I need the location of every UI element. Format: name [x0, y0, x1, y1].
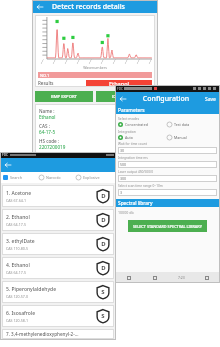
staticText: ╱: [53, 59, 56, 64]
button[interactable]: Explosive: [76, 175, 113, 180]
staticText: Wait for time count: [118, 142, 147, 146]
button[interactable]: Back: [119, 95, 127, 103]
staticText: Parameters: [118, 107, 145, 114]
button[interactable]: 30: [118, 147, 217, 154]
staticText: 500: [120, 162, 127, 167]
button[interactable]: 6. Isosafrole: [2, 305, 114, 327]
staticText: D: [101, 264, 106, 272]
staticText: ╱: [137, 59, 140, 64]
staticText: CAS 110-80-5: [6, 246, 29, 251]
button[interactable]: BMP EXPORT: [35, 91, 93, 102]
other: Back: [119, 95, 127, 103]
staticText: 2. Ethanol: [6, 214, 30, 221]
staticText: ╱: [113, 59, 116, 64]
button[interactable]: 4. Ethanol: [2, 257, 114, 279]
staticText: BMP EXPORT: [51, 94, 77, 100]
staticText: Results: [38, 80, 54, 86]
staticText: CAS 120-58-1: [6, 318, 29, 323]
staticText: Name :: [39, 108, 55, 114]
staticText: 1. Acetone: [6, 190, 32, 197]
button[interactable]: SELECT STANDARD SPECTRAL LIBRARY: [128, 220, 207, 232]
staticText: CAS 64-17-5: [6, 222, 27, 227]
staticText: ╱: [65, 59, 68, 64]
button[interactable]: 2. Ethanol: [2, 209, 114, 231]
staticText: Search: [10, 175, 23, 180]
staticText: NO.1: [40, 73, 50, 78]
staticText: HS code :: [39, 138, 60, 144]
staticText: ╱: [77, 59, 80, 64]
staticText: ╱: [149, 59, 152, 64]
staticText: ╱: [89, 59, 92, 64]
staticText: Integration: [118, 129, 136, 134]
staticText: CAS :: [39, 123, 50, 129]
other: Back: [4, 161, 12, 169]
staticText: CAS 120-57-0: [6, 294, 29, 299]
staticText: Concentrated: [125, 122, 148, 127]
staticText: ╱: [41, 59, 44, 64]
staticText: D: [101, 240, 106, 248]
button[interactable]: 500: [118, 161, 217, 168]
button[interactable]: Home: [115, 272, 142, 283]
staticText: CAS 67-64-1: [6, 198, 27, 203]
staticText: 64-17-5: [39, 129, 56, 135]
staticText: Explosive: [83, 175, 100, 180]
staticText: 7. 3,4-methylenedioxyphenyl-2-...: [6, 331, 110, 337]
button[interactable]: Ethanol: [86, 80, 152, 87]
staticText: ╱: [125, 59, 128, 64]
button[interactable]: EXPORT DATA: [96, 91, 155, 102]
staticText: 7:23: [178, 275, 185, 280]
staticText: FDC: [2, 153, 8, 157]
staticText: Manual: [174, 135, 187, 140]
staticText: Test data: [174, 122, 190, 127]
staticText: Narcotic: [46, 175, 61, 180]
staticText: CAS 64-17-5: [6, 270, 27, 275]
staticText: 2207200019: [39, 144, 66, 150]
staticText: 6. Isosafrole: [6, 310, 36, 317]
staticText: S: [101, 312, 105, 320]
button[interactable]: Switch: [168, 272, 194, 283]
button[interactable]: 1. Acetone: [2, 185, 114, 207]
staticText: Select scan time range 0~10m: [118, 184, 163, 188]
staticText: Configuration: [127, 94, 205, 104]
staticText: SELECT STANDARD SPECTRAL LIBRARY: [133, 224, 202, 229]
staticText: 4. Ethanol: [6, 262, 30, 269]
button[interactable]: 3: [118, 189, 217, 196]
staticText: EXPORT DATA: [112, 94, 140, 100]
button[interactable]: 300: [118, 175, 217, 182]
button[interactable]: Search: [3, 175, 39, 180]
button[interactable]: Menu: [194, 272, 220, 283]
staticText: 3: [120, 190, 123, 195]
staticText: Spectral library: [118, 200, 153, 207]
staticText: Save: [205, 96, 216, 103]
staticText: 5. Piperonylaldehyde: [6, 286, 57, 293]
button[interactable]: Back: [32, 0, 158, 13]
staticText: S: [101, 288, 105, 296]
staticText: 3. ethylDate: [6, 238, 35, 245]
staticText: ╱: [101, 59, 104, 64]
staticText: D: [101, 192, 106, 200]
staticText: Detect records details: [52, 2, 125, 12]
button[interactable]: Files: [142, 272, 168, 283]
button[interactable]: Manual: [167, 135, 217, 140]
button[interactable]: 3. ethylDate: [2, 233, 114, 255]
button[interactable]: Narcotic: [39, 175, 76, 180]
staticText: 30: [120, 148, 125, 153]
staticText: Integration time ms: [118, 156, 148, 160]
button[interactable]: Save: [205, 96, 216, 103]
staticText: 10000 db: [118, 210, 134, 215]
staticText: Laser output 450/500/0: [118, 170, 154, 174]
staticText: 300: [120, 176, 127, 181]
button[interactable]: Auto: [118, 135, 167, 140]
button[interactable]: Test data: [167, 122, 217, 127]
staticText: Wavenumbers: [35, 65, 155, 70]
staticText: D: [101, 216, 106, 224]
button[interactable]: Back: [0, 158, 116, 172]
button[interactable]: 5. Piperonylaldehyde: [2, 281, 114, 303]
staticText: Auto: [125, 135, 133, 140]
button[interactable]: Concentrated: [118, 122, 167, 127]
staticText: Ethanol: [109, 80, 130, 87]
staticText: FDC: [117, 87, 123, 91]
button[interactable]: 7. 3,4-methylenedioxyphenyl-2-...: [2, 329, 114, 339]
